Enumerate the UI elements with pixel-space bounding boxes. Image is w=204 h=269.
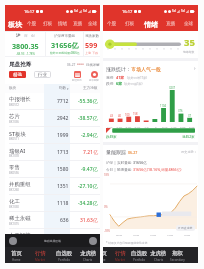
staticText: -27.10亿 [78, 183, 98, 190]
staticText: 1999 [57, 132, 69, 139]
staticText: 06-27 [67, 63, 76, 67]
button[interactable]: 个股 [24, 17, 40, 31]
button[interactable]: 板块 [5, 17, 24, 31]
staticText: (比昨日增17家) [127, 76, 148, 80]
staticText: 中报增长 [9, 96, 31, 103]
staticText: 直播 [166, 21, 176, 27]
staticText: -7-5% [116, 125, 123, 128]
staticText: 沪深 | 实时量能 [106, 160, 133, 165]
staticText: BK1030 [9, 205, 19, 209]
button[interactable]: 全球 [180, 17, 198, 31]
staticText: 100 [125, 113, 130, 117]
staticText: 自选股 [131, 250, 148, 257]
staticText: 个股 [107, 21, 117, 27]
staticText: 板块 [8, 20, 22, 29]
button[interactable]: 期权 [168, 247, 187, 263]
staticText: 40 [118, 114, 121, 118]
button[interactable]: 行业 [34, 71, 51, 78]
staticText: 41家 [116, 75, 125, 80]
staticText: 7712 [57, 98, 69, 105]
staticText: 首页 [103, 250, 107, 257]
staticText: 较昨日同期缩量4866亿 [50, 51, 80, 55]
button[interactable]: 芯片 [5, 110, 100, 127]
staticText: 3800.35 [12, 41, 39, 51]
button[interactable]: 龙虎榜 [149, 247, 168, 263]
button[interactable]: 自选股 [52, 247, 76, 263]
staticText: 0-1% [162, 125, 168, 128]
button[interactable]: 首页 [5, 247, 28, 263]
staticText: Secondary [170, 258, 185, 262]
button[interactable]: 直播 [162, 17, 180, 31]
staticText: 打板 [43, 21, 53, 27]
staticText: 14:00 [167, 233, 174, 236]
button[interactable]: 打板 [121, 17, 139, 31]
staticText: 历史走势 [181, 150, 194, 154]
button[interactable]: 涨跌家数 [84, 32, 100, 56]
button[interactable]: 沪 [5, 32, 45, 56]
button[interactable]: ST板块 [5, 127, 100, 144]
button[interactable]: 首页 [103, 247, 111, 263]
staticText: ▾ [67, 87, 69, 90]
staticText: 35 [184, 36, 195, 49]
staticText: 涨跌统计： [106, 66, 131, 72]
staticText: 深 [24, 34, 28, 39]
button[interactable]: 打板 [40, 17, 55, 31]
staticText: 拖动选择区域 [44, 239, 61, 243]
staticText: › [194, 150, 196, 154]
button[interactable]: Financial calendar [72, 71, 82, 82]
button[interactable]: 沪深两市量能 [46, 32, 83, 56]
staticText: 日线详解 [86, 63, 100, 67]
staticText: 量能跟踪 [106, 149, 126, 155]
staticText: 3-5% [180, 125, 186, 128]
button[interactable]: 自选股 [130, 247, 149, 263]
staticText: -5-3% [125, 125, 132, 128]
staticText: 涨跌家数 [85, 34, 99, 38]
button[interactable]: 情绪 [55, 17, 70, 31]
button[interactable]: 瑞银AI [5, 144, 100, 161]
staticText: › [194, 65, 196, 72]
staticText: 31.63亿 [80, 217, 98, 224]
button[interactable]: 情绪 [139, 17, 162, 31]
staticText: 芯片 [9, 113, 20, 120]
button[interactable]: 中报增长 [5, 93, 100, 110]
button[interactable]: 人工智能 [5, 229, 100, 246]
staticText: 16:17 [24, 9, 35, 14]
staticText: 10:30 [133, 233, 140, 236]
button[interactable]: 精选 [9, 71, 26, 78]
button[interactable]: 龙虎榜 [76, 247, 100, 263]
staticText: 盘中提醒 [89, 79, 99, 82]
button[interactable]: 稀土永磁 [5, 212, 100, 229]
staticText: <-7% [107, 125, 113, 128]
staticText: (比昨日减1家) [124, 82, 143, 86]
button[interactable]: Capture toolbar [5, 234, 100, 247]
staticText: 跌49家 [106, 134, 117, 139]
staticText: 1-3% [171, 125, 177, 128]
button[interactable]: 全球 [85, 17, 100, 31]
button[interactable]: 行情 [28, 247, 52, 263]
button[interactable]: 个股 [103, 17, 121, 31]
staticText: -2.94亿 [81, 132, 98, 139]
staticText: 财经日历 [72, 79, 82, 82]
button[interactable]: 并购重组 [5, 178, 100, 195]
staticText: 0 [155, 125, 157, 128]
staticText: 1713 [57, 149, 69, 156]
staticText: Market [35, 258, 46, 262]
staticText: 主力净额 [83, 86, 98, 91]
staticText: -68.93 -1.78% [16, 52, 35, 56]
staticText: 1580 [57, 166, 69, 173]
staticText: 43 [110, 114, 113, 118]
button[interactable]: Alerts [89, 71, 99, 82]
button[interactable]: 零售 [5, 161, 100, 178]
button[interactable]: 行情 [111, 247, 130, 263]
button[interactable]: 化工 [5, 195, 100, 212]
staticText: 全球 [184, 21, 194, 27]
staticText: 情绪 [58, 21, 68, 27]
staticText: Charts [154, 258, 164, 262]
staticText: 零售 [9, 164, 20, 171]
staticText: -38.57亿 [78, 115, 98, 122]
button[interactable]: ⟳ 历史走势 [176, 225, 195, 231]
button[interactable]: 直播 [70, 17, 85, 31]
staticText: 13:00 [150, 233, 157, 236]
staticText: BK0556 [9, 171, 19, 175]
staticText: 31656亿(18.16%,缩量4866亿) [133, 167, 182, 172]
